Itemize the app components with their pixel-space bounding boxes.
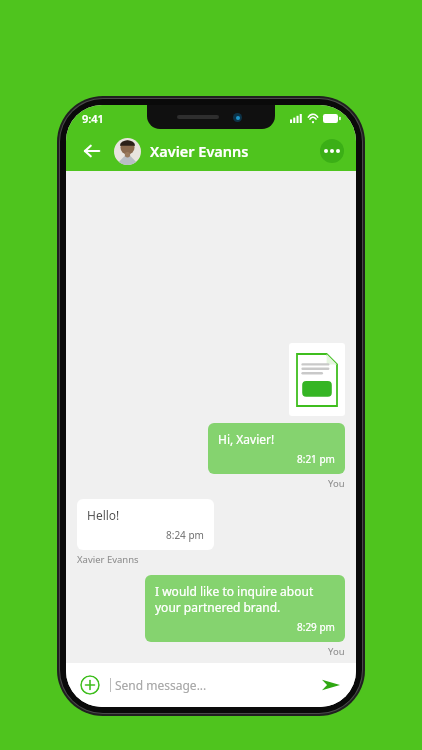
staticText: Xavier Evanns — [77, 553, 139, 566]
button[interactable]: Send — [320, 674, 342, 696]
staticText: You — [328, 477, 345, 490]
staticText: Send message... — [115, 677, 207, 693]
staticText: Hi, Xavier! — [218, 431, 275, 447]
staticText: Hello! — [87, 507, 120, 523]
button[interactable]: Document attachment — [289, 343, 345, 416]
button[interactable]: Back — [78, 137, 106, 165]
button[interactable]: I would like to inquire about your partn… — [145, 575, 345, 642]
button[interactable]: Profile photo — [114, 138, 141, 165]
button[interactable]: Hi, Xavier! — [208, 423, 345, 474]
staticText: 8:29 pm — [297, 620, 335, 634]
button[interactable]: Hello! — [77, 499, 214, 550]
staticText: 9:41 — [82, 111, 104, 126]
staticText: Xavier Evanns — [150, 141, 249, 161]
staticText: 8:21 pm — [297, 452, 335, 466]
button[interactable]: Send message... — [110, 677, 320, 693]
staticText: I would like to inquire about your partn… — [155, 583, 335, 615]
staticText: 8:24 pm — [166, 528, 204, 542]
button[interactable]: Add attachment — [80, 675, 100, 695]
button[interactable]: More options — [320, 139, 344, 163]
staticText: You — [328, 645, 345, 658]
